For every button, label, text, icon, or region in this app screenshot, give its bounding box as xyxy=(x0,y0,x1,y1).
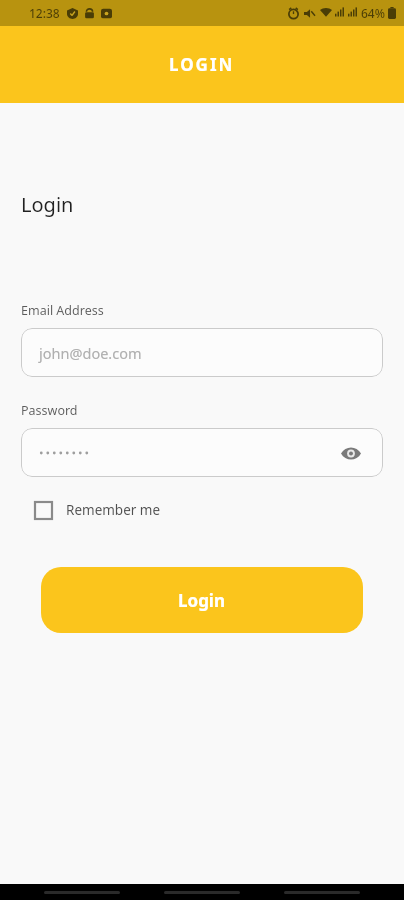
staticText: 64% xyxy=(361,5,385,21)
staticText: Password xyxy=(21,402,78,419)
button[interactable]: Remember me xyxy=(35,501,161,519)
staticText: john@doe.com xyxy=(39,343,142,363)
button[interactable]: Login xyxy=(41,567,363,633)
button[interactable]: Show password xyxy=(337,439,365,467)
button[interactable]: Show password xyxy=(21,428,383,477)
staticText: 12:38 xyxy=(29,5,60,21)
button[interactable]: john@doe.com xyxy=(21,328,383,377)
staticText: LOGIN xyxy=(169,53,235,76)
staticText: Login xyxy=(178,589,226,612)
staticText: Remember me xyxy=(66,501,161,519)
staticText: Login xyxy=(21,191,74,218)
staticText: Email Address xyxy=(21,302,104,319)
